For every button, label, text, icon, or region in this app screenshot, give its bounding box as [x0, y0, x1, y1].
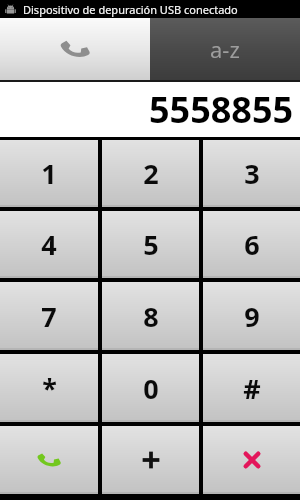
staticText: 5558855: [149, 85, 294, 134]
button[interactable]: 4: [0, 211, 98, 278]
button[interactable]: 3: [203, 140, 300, 207]
button[interactable]: Llamar: [0, 426, 98, 494]
button[interactable]: a-z: [150, 18, 300, 80]
button[interactable]: Borrar: [203, 426, 300, 494]
staticText: Dispositivo de depuración USB conectado: [23, 2, 238, 17]
staticText: 9: [244, 298, 260, 335]
staticText: #: [243, 370, 261, 407]
button[interactable]: 8: [102, 282, 199, 350]
button[interactable]: 9: [203, 282, 300, 350]
staticText: 6: [244, 226, 260, 263]
button[interactable]: *: [0, 354, 98, 422]
staticText: *: [42, 370, 57, 407]
button[interactable]: 1: [0, 140, 98, 207]
button[interactable]: Teclado: [0, 18, 150, 80]
button[interactable]: #: [203, 354, 300, 422]
staticText: 2: [143, 155, 159, 192]
staticText: 5: [143, 226, 159, 263]
button[interactable]: 5: [102, 211, 199, 278]
staticText: 1: [41, 155, 57, 192]
button[interactable]: 6: [203, 211, 300, 278]
staticText: 4: [41, 226, 57, 263]
staticText: 8: [143, 298, 159, 335]
button[interactable]: 2: [102, 140, 199, 207]
staticText: 7: [41, 298, 57, 335]
staticText: 3: [244, 155, 260, 192]
button[interactable]: 5558855: [0, 82, 294, 137]
staticText: 0: [143, 370, 159, 407]
staticText: a-z: [210, 34, 240, 64]
button[interactable]: Más: [102, 426, 199, 494]
button[interactable]: 0: [102, 354, 199, 422]
button[interactable]: 7: [0, 282, 98, 350]
